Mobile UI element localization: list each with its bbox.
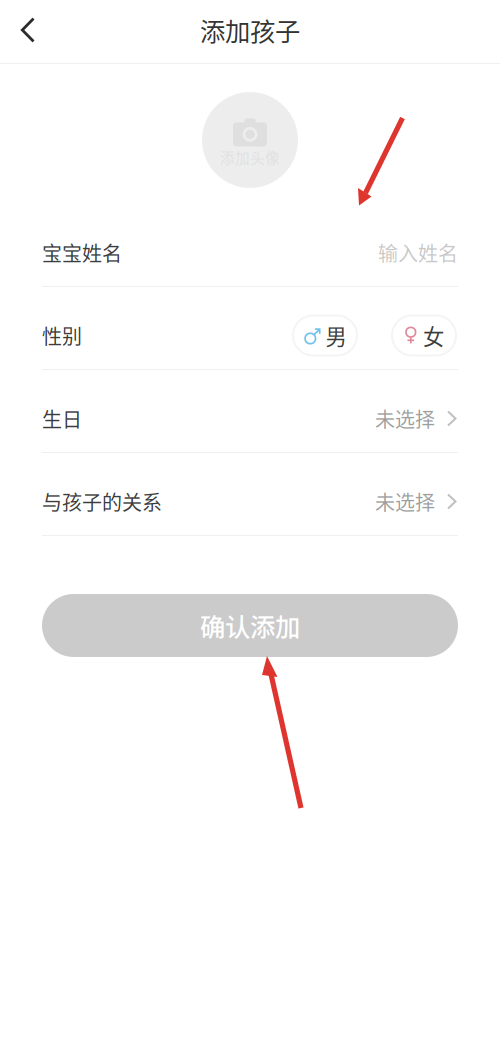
staticText: 添加头像 <box>220 146 280 168</box>
staticText: 性别 <box>42 321 82 350</box>
staticText: 生日 <box>42 404 82 433</box>
button[interactable]: 返回 <box>0 7 56 53</box>
button[interactable]: 生日 <box>42 370 458 452</box>
button[interactable]: 男 <box>293 315 357 355</box>
staticText: 添加孩子 <box>200 12 300 48</box>
button[interactable]: 与孩子的关系 <box>42 453 458 535</box>
staticText: 女 <box>423 320 444 351</box>
staticText: 确认添加 <box>200 607 300 644</box>
button[interactable]: 确认添加 <box>42 594 458 657</box>
staticText: 未选择 <box>375 404 435 433</box>
button[interactable]: 女 <box>392 315 456 355</box>
staticText: 宝宝姓名 <box>42 238 122 267</box>
staticText: 与孩子的关系 <box>42 487 162 516</box>
button[interactable]: 添加头像 <box>202 92 298 188</box>
staticText: 输入姓名 <box>378 238 458 267</box>
staticText: 男 <box>325 320 346 351</box>
staticText: 未选择 <box>375 487 435 516</box>
